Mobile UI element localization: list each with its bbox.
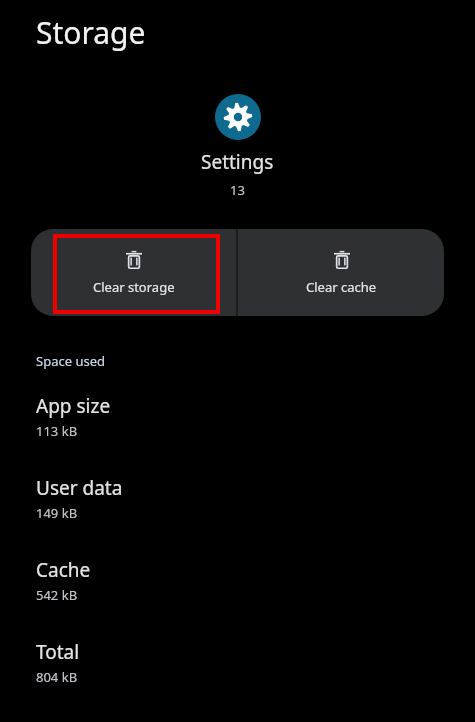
staticText: Settings [201,149,274,175]
button[interactable]: Clear cache [238,229,444,316]
staticText: Cache [36,557,91,583]
staticText: 804 kB [36,668,78,686]
staticText: 13 [230,181,245,199]
staticText: 113 kB [36,422,78,440]
button[interactable]: Clear storage [31,229,236,316]
staticText: Storage [36,12,146,53]
staticText: Total [36,639,80,665]
staticText: Clear cache [306,278,377,296]
staticText: User data [36,475,123,501]
staticText: 542 kB [36,586,78,604]
other: Clear storage [124,250,144,270]
staticText: Space used [36,352,105,370]
staticText: Clear storage [93,278,175,296]
staticText: 149 kB [36,504,78,522]
other: Clear cache [332,250,352,270]
staticText: App size [36,393,111,419]
